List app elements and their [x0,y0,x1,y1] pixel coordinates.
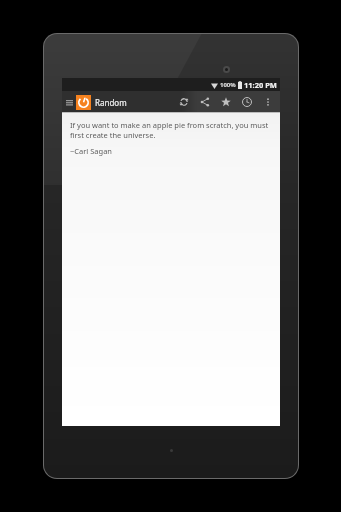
button[interactable]: More options [257,91,278,113]
staticText: 11:20 PM [244,80,277,90]
staticText: If you want to make an apple pie from sc… [70,120,272,140]
staticText: 100% [220,81,236,89]
button[interactable]: Navigation menu [64,91,75,113]
button[interactable]: History [236,91,257,113]
staticText: Random [95,97,127,108]
button[interactable]: Share [194,91,215,113]
button[interactable]: Refresh [173,91,194,113]
staticText: ~Carl Sagan [70,146,112,156]
button[interactable]: Favorite [215,91,236,113]
